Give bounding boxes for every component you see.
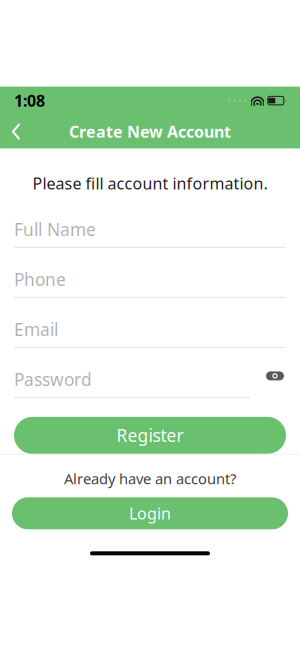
staticText: Create New Account <box>69 121 231 142</box>
staticText: Phone <box>14 268 66 291</box>
button[interactable]: Login <box>12 497 288 529</box>
staticText: Please fill account information. <box>32 173 267 194</box>
staticText: Register <box>116 424 183 447</box>
staticText: Email <box>14 318 58 341</box>
button[interactable]: Back <box>0 116 32 148</box>
button[interactable]: Register <box>14 417 286 454</box>
staticText: Password <box>14 368 92 391</box>
staticText: 1:08 <box>14 90 45 111</box>
staticText: Already have an account? <box>64 469 236 488</box>
staticText: Full Name <box>14 218 96 241</box>
staticText: Login <box>129 503 171 524</box>
button[interactable]: Show password <box>264 365 286 387</box>
